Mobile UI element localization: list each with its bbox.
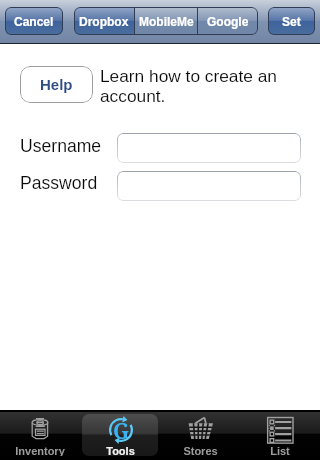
button[interactable]: Tools [82, 414, 158, 456]
other: Inventory [27, 417, 53, 443]
button[interactable] [117, 133, 301, 163]
staticText: Tools [106, 445, 135, 456]
staticText: List [270, 445, 290, 456]
staticText: Learn how to create an account. [100, 66, 300, 105]
other: Tools [108, 417, 134, 443]
other: List [267, 417, 293, 443]
button[interactable]: Cancel [5, 7, 63, 35]
staticText: Google [207, 15, 249, 28]
button[interactable]: List [242, 414, 318, 456]
staticText: Password [20, 173, 98, 193]
button[interactable]: Inventory [2, 414, 78, 456]
staticText: G [113, 417, 130, 443]
button[interactable]: Help [20, 66, 93, 103]
staticText: Cancel [14, 15, 54, 28]
button[interactable]: Dropbox [74, 7, 134, 35]
button[interactable]: Set [268, 7, 315, 35]
button[interactable] [117, 171, 301, 201]
other: Stores [188, 417, 214, 443]
staticText: Inventory [15, 445, 65, 456]
button[interactable]: Stores [162, 414, 238, 456]
staticText: Help [40, 76, 73, 93]
button[interactable]: Google [198, 7, 258, 35]
staticText: Username [20, 136, 102, 156]
staticText: MobileMe [139, 15, 194, 28]
staticText: Stores [183, 445, 218, 456]
button[interactable]: MobileMe [135, 7, 197, 35]
staticText: Set [282, 15, 301, 28]
staticText: Dropbox [79, 15, 129, 28]
